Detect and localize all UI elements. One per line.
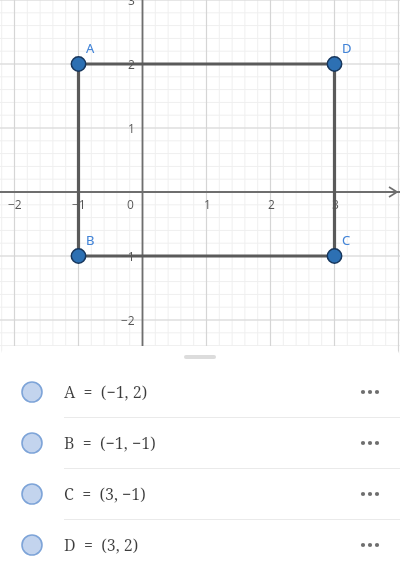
button[interactable]: More options for B: [346, 421, 394, 465]
staticText: 3: [332, 196, 339, 212]
button[interactable]: Toggle point A: [21, 381, 43, 403]
button[interactable]: Toggle point C: [21, 483, 43, 505]
staticText: C: [342, 231, 351, 249]
staticText: 0: [127, 196, 134, 212]
button[interactable]: Toggle point A: [0, 367, 400, 418]
staticText: B: [86, 231, 95, 249]
staticText: 2: [268, 196, 275, 212]
staticText: 1: [128, 120, 135, 136]
button[interactable]: Toggle point D: [21, 534, 43, 556]
staticText: 1: [204, 196, 211, 212]
button[interactable]: Toggle point B: [21, 432, 43, 454]
button[interactable]: More options for D: [346, 523, 394, 567]
staticText: D = (3, 2): [64, 534, 139, 556]
staticText: −2: [8, 196, 22, 212]
staticText: −1: [72, 196, 86, 212]
button[interactable]: More options for C: [346, 472, 394, 516]
button[interactable]: Toggle point D: [0, 520, 400, 569]
staticText: B = (−1, −1): [64, 432, 156, 454]
staticText: −1: [121, 248, 135, 264]
button[interactable]: More options for A: [346, 370, 394, 414]
staticText: D: [342, 39, 352, 57]
button[interactable]: Toggle point B: [0, 418, 400, 469]
staticText: 2: [128, 56, 135, 72]
staticText: −2: [121, 312, 135, 328]
staticText: 3: [128, 0, 135, 8]
staticText: C = (3, −1): [64, 483, 146, 505]
staticText: A: [86, 39, 95, 57]
button[interactable]: Toggle point C: [0, 469, 400, 520]
staticText: A = (−1, 2): [64, 381, 148, 403]
